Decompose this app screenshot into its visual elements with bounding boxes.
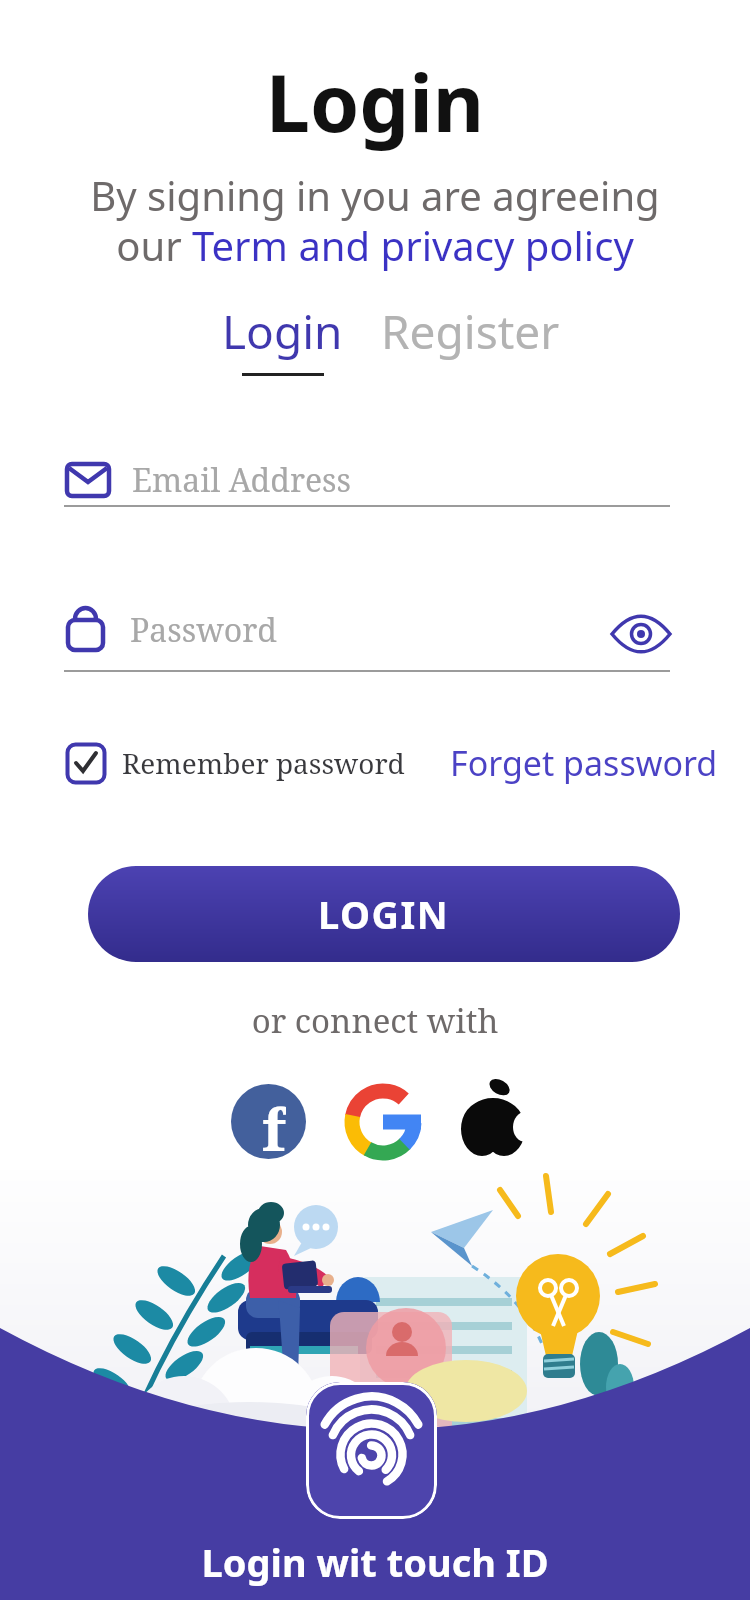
button[interactable] [306, 1382, 437, 1519]
button[interactable] [344, 1083, 422, 1161]
staticText: Email Address [132, 458, 351, 502]
button[interactable]: Login wit touch ID [0, 1536, 750, 1588]
staticText: Password [130, 608, 277, 652]
staticText: or connect with [0, 998, 750, 1043]
button[interactable]: Login [222, 300, 343, 376]
button[interactable]: Forget password [450, 740, 718, 786]
button[interactable] [612, 617, 670, 651]
button[interactable]: Email Address [66, 458, 670, 502]
staticText: LOGIN [318, 888, 450, 940]
button[interactable]: Remember password [66, 742, 405, 784]
button[interactable]: LOGIN [88, 866, 680, 962]
button[interactable]: By signing in you are agreeing our Term … [0, 168, 750, 273]
button[interactable]: Register [381, 300, 560, 363]
staticText: Login [222, 300, 343, 363]
button[interactable]: Password [66, 606, 670, 654]
staticText: Login [0, 48, 750, 156]
staticText: Remember password [122, 744, 405, 782]
button[interactable]: f [231, 1084, 306, 1159]
button[interactable] [455, 1076, 535, 1162]
staticText: f [262, 1089, 286, 1159]
